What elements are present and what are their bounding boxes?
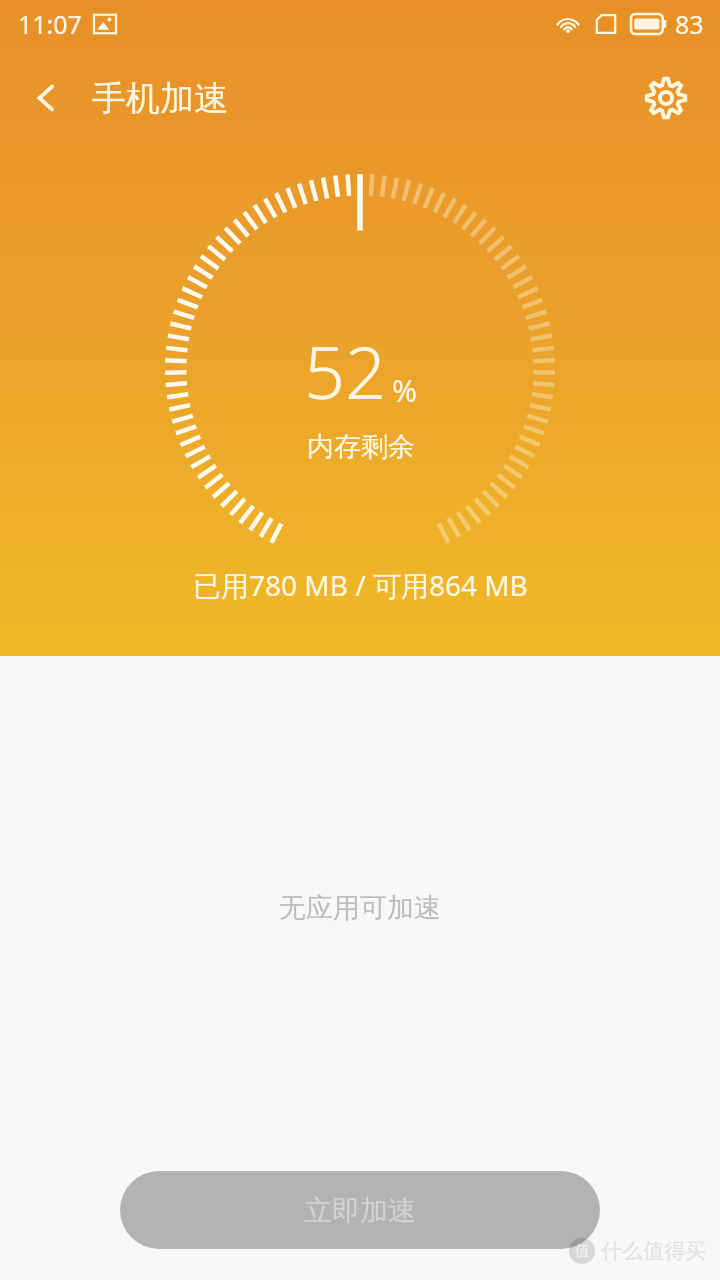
staticText: 已用780 MB / 可用864 MB bbox=[193, 566, 528, 604]
staticText: 内存剩余 bbox=[307, 430, 415, 464]
staticText: 无应用可加速 bbox=[279, 891, 441, 925]
button[interactable]: Settings bbox=[634, 66, 698, 130]
staticText: 值 bbox=[575, 1242, 590, 1261]
staticText: 11:07 bbox=[18, 7, 82, 41]
staticText: 83 bbox=[675, 7, 704, 41]
staticText: 什么值得买 bbox=[601, 1238, 706, 1264]
button[interactable]: 立即加速 bbox=[120, 1171, 600, 1249]
staticText: 52 bbox=[304, 322, 387, 420]
button[interactable]: Back bbox=[14, 66, 78, 130]
staticText: 手机加速 bbox=[92, 77, 228, 120]
staticText: 立即加速 bbox=[304, 1193, 416, 1228]
staticText: % bbox=[392, 370, 417, 411]
